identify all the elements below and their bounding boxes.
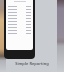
button[interactable] <box>6 20 33 23</box>
button[interactable] <box>6 17 33 20</box>
button[interactable] <box>6 11 33 14</box>
button[interactable] <box>6 8 33 11</box>
button[interactable] <box>6 5 33 8</box>
button[interactable] <box>6 26 33 29</box>
button[interactable] <box>6 14 33 17</box>
staticText: Simple Reporting <box>15 61 49 66</box>
button[interactable] <box>6 32 33 35</box>
button[interactable] <box>6 23 33 26</box>
button[interactable] <box>6 29 33 32</box>
